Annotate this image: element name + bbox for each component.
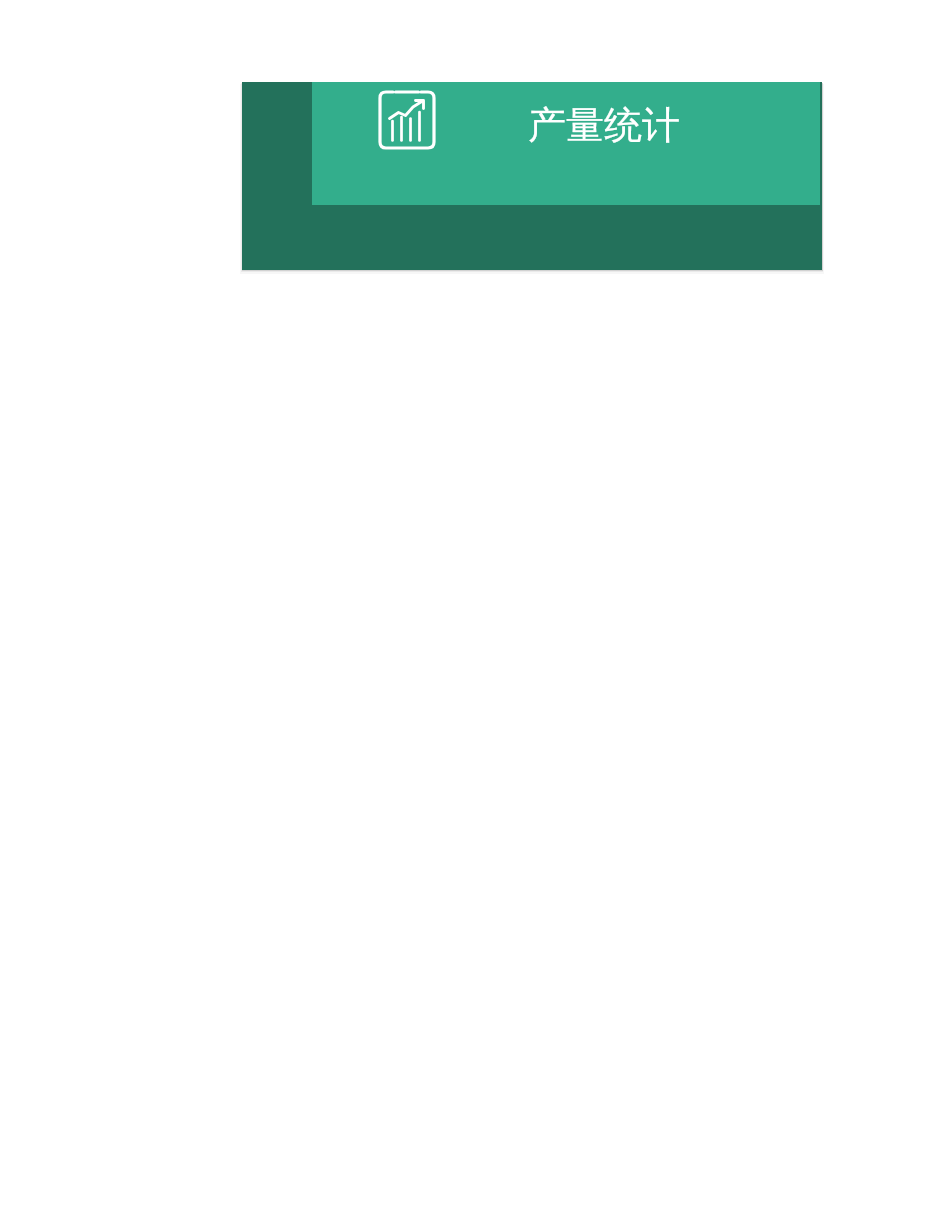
staticText: 产量统计 <box>528 101 680 149</box>
other: 产量统计 <box>378 90 436 150</box>
button[interactable]: 产量统计 <box>242 82 822 270</box>
